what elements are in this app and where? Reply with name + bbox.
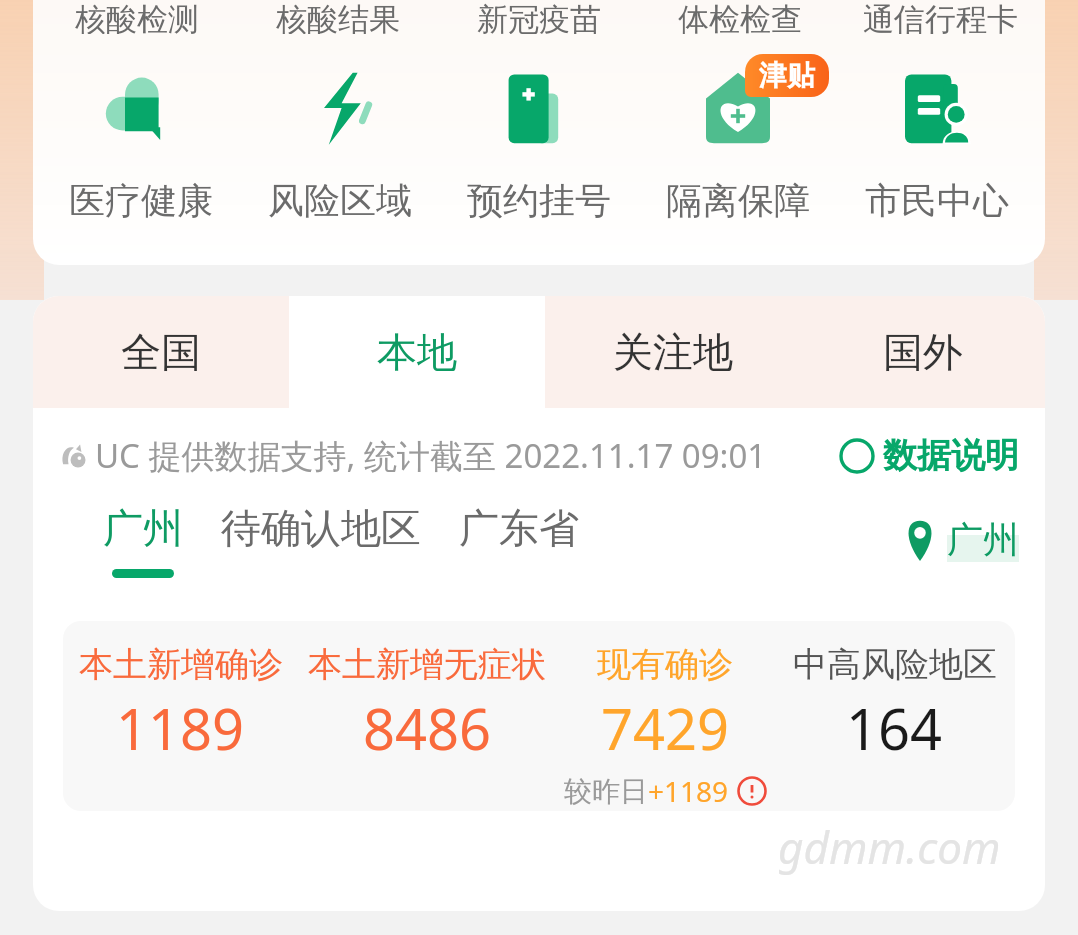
staticText: 国外 <box>883 327 963 377</box>
staticText: 本地 <box>377 327 457 377</box>
button[interactable]: 广州 <box>103 503 183 578</box>
button[interactable]: 国外 <box>801 296 1045 408</box>
button[interactable]: 核酸检测 <box>37 0 237 34</box>
button[interactable]: 关注地 <box>545 296 801 408</box>
staticText: UC 提供数据支持, 统计截至 2022.11.17 09:01 <box>95 433 767 478</box>
button[interactable]: 体检检查 <box>639 0 840 34</box>
staticText: 7429 <box>601 690 730 766</box>
button[interactable]: 现有确诊 <box>556 643 774 811</box>
staticText: 预约挂号 <box>467 178 611 223</box>
button[interactable]: 风险区域 <box>245 60 435 223</box>
staticText: +1189 <box>648 772 729 810</box>
other: 定位城市 <box>903 519 937 561</box>
button[interactable]: 待确认地区 <box>221 503 421 569</box>
staticText: 现有确诊 <box>597 643 733 686</box>
staticText: 中高风险地区 <box>793 643 997 686</box>
button[interactable]: 广东省 <box>459 503 579 569</box>
staticText: 体检检查 <box>678 0 802 34</box>
button[interactable]: 数据说明 <box>839 434 1019 477</box>
staticText: 关注地 <box>613 327 733 377</box>
staticText: 核酸检测 <box>75 0 199 34</box>
staticText: gdmm.com <box>778 817 1001 877</box>
staticText: 本土新增确诊 <box>79 643 283 686</box>
staticText: 市民中心 <box>865 178 1009 223</box>
button[interactable]: 中高风险地区 <box>774 643 1015 811</box>
staticText: 核酸结果 <box>276 0 400 34</box>
button[interactable]: 核酸结果 <box>237 0 438 34</box>
button[interactable]: 隔离保障 <box>643 60 833 223</box>
staticText: 风险区域 <box>268 178 412 223</box>
staticText: 通信行程卡 <box>863 0 1018 34</box>
staticText: 广州 <box>947 517 1019 562</box>
staticText: 广州 <box>103 503 183 553</box>
button[interactable]: 全国 <box>33 296 289 408</box>
staticText: 隔离保障 <box>666 178 810 223</box>
button[interactable]: 新冠疫苗 <box>438 0 639 34</box>
staticText: 全国 <box>121 327 201 377</box>
staticText: 津贴 <box>759 58 815 93</box>
button[interactable]: 预约挂号 <box>444 60 634 223</box>
button[interactable]: 通信行程卡 <box>840 0 1041 34</box>
staticText: 医疗健康 <box>69 178 213 223</box>
staticText: 本土新增无症状 <box>308 643 546 686</box>
button[interactable]: 市民中心 <box>842 60 1032 223</box>
staticText: 1189 <box>116 690 245 766</box>
button[interactable]: 本地 <box>289 296 545 408</box>
staticText: 164 <box>846 690 943 766</box>
staticText: 8486 <box>363 690 492 766</box>
staticText: 待确认地区 <box>221 503 421 553</box>
staticText: 新冠疫苗 <box>477 0 601 34</box>
button[interactable]: 本土新增无症状 <box>298 643 556 811</box>
button[interactable]: 本土新增确诊 <box>63 643 298 811</box>
button[interactable]: 定位城市 <box>903 517 1019 562</box>
other: 提示 <box>737 776 767 806</box>
staticText: 广东省 <box>459 503 579 553</box>
other: 数据说明 <box>839 438 875 474</box>
staticText: 数据说明 <box>883 434 1019 477</box>
button[interactable]: 医疗健康 <box>46 60 236 223</box>
staticText: 较昨日 <box>564 774 648 809</box>
